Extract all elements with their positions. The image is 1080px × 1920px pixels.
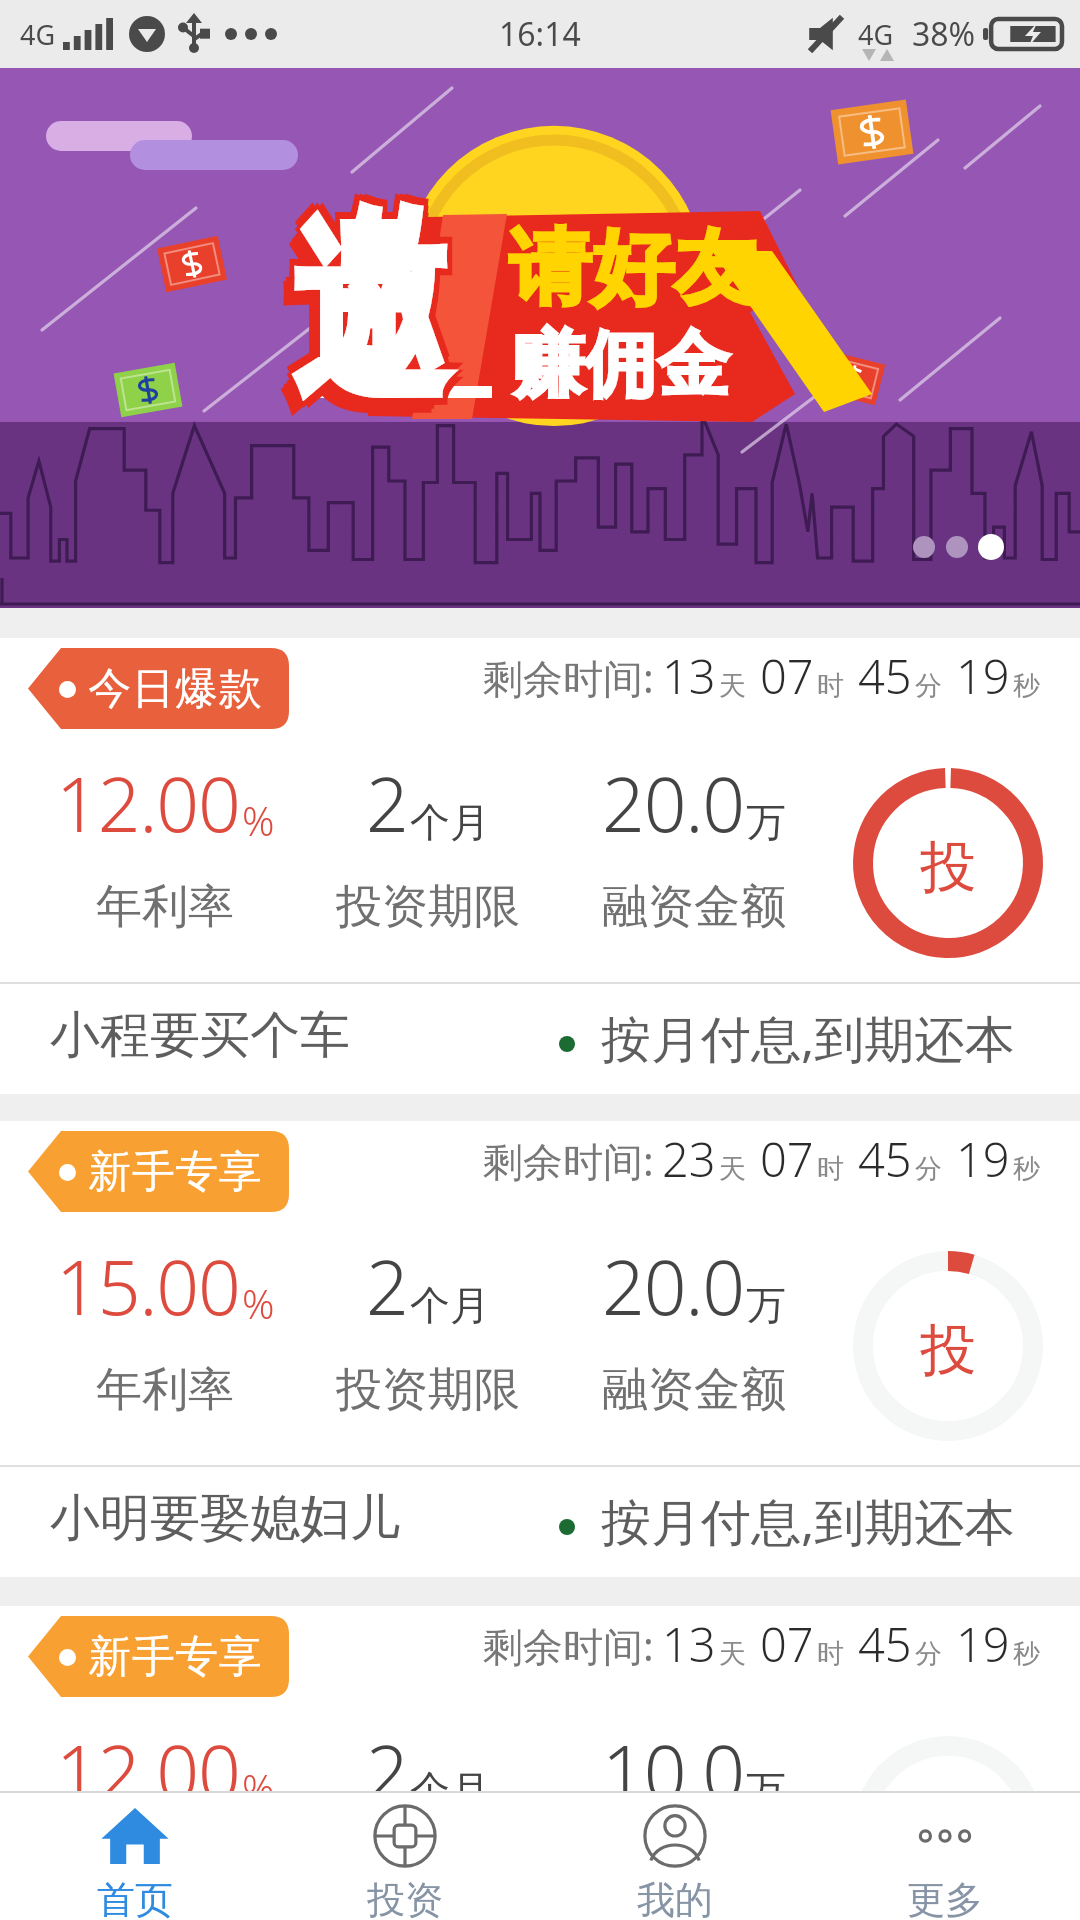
staticText: 个月 [410,1280,490,1330]
button[interactable]: 投资 [853,1251,1043,1441]
staticText: 天 [719,669,746,703]
staticText: 投 [920,832,976,903]
staticText: 45 [858,1127,912,1191]
staticText: 剩余时间: [483,1133,654,1188]
staticText: 4G [858,16,894,53]
staticText: 邀 [292,181,446,437]
staticText: 投资 [367,1876,443,1920]
staticText: 邀 [287,181,441,437]
staticText: 投资期限 [336,878,520,936]
staticText: 38% [912,12,976,56]
button[interactable]: 我的 [540,1793,810,1920]
staticText: % [242,1276,275,1330]
staticText: 请好友 [509,217,757,320]
staticText: 时 [817,1637,844,1671]
staticText: 天 [719,1637,746,1671]
staticText: 投资期限 [336,1361,520,1419]
staticText: 19 [956,1127,1010,1191]
staticText: 小明要娶媳妇儿 [50,1487,400,1550]
staticText: 万 [746,1280,786,1330]
staticText: 20.0 [602,1235,744,1337]
button[interactable]: 投资 [853,1736,1043,1806]
staticText: 邀 [297,181,451,437]
staticText: 15.00 [56,1235,240,1337]
staticText: 2 [366,1720,408,1806]
staticText: 万 [746,797,786,847]
staticText: 19 [956,1612,1010,1676]
staticText: 分 [915,1152,942,1186]
staticText: 10.0 [602,1720,744,1806]
staticText: 分 [915,669,942,703]
staticText: 邀 [287,174,441,431]
staticText: 16:14 [499,12,581,56]
staticText: 邀 [292,174,446,431]
staticText: 13 [662,644,716,708]
staticText: 天 [719,1152,746,1186]
button[interactable]: 首页 [0,1793,270,1920]
staticText: 秒 [1013,1152,1040,1186]
button[interactable]: 新手专享 [0,1121,1080,1577]
button[interactable]: 新手专享 [0,1606,1080,1806]
staticText: 首页 [97,1876,173,1920]
button[interactable]: 投资 [853,768,1043,958]
staticText: 07 [760,644,814,708]
button[interactable]: 今日爆款 [0,638,1080,1094]
staticText: 45 [858,1612,912,1676]
staticText: 45 [858,644,912,708]
staticText: 按月付息,到期还本 [601,1004,1015,1072]
staticText: 2 [366,752,408,854]
staticText: 个月 [410,797,490,847]
staticText: 4G [20,16,56,53]
staticText: 小程要买个车 [50,1004,350,1067]
staticText: 邀 [281,196,435,452]
staticText: 07 [760,1127,814,1191]
staticText: 邀 [283,192,437,449]
staticText: 融资金额 [602,1361,786,1419]
staticText: 更多 [907,1876,983,1920]
staticText: 万 [746,1765,786,1806]
staticText: 个月 [410,1765,490,1806]
staticText: % [242,1761,275,1806]
staticText: 07 [760,1612,814,1676]
staticText: 邀 [287,188,441,444]
button[interactable]: 投资 [270,1793,540,1920]
staticText: 融资金额 [602,878,786,936]
staticText: 19 [956,644,1010,708]
staticText: 年利率 [96,878,234,936]
staticText: 剩余时间: [483,1618,654,1673]
staticText: 时 [817,1152,844,1186]
staticText: 新手专享 [88,1630,262,1684]
staticText: 我的 [637,1876,713,1920]
staticText: 赚佣金 [512,320,730,411]
staticText: 时 [817,669,844,703]
button[interactable]: 更多 [810,1793,1080,1920]
button[interactable]: 邀请好友赚佣金 banner [0,68,1080,608]
staticText: 新手专享 [88,1145,262,1199]
staticText: 今日爆款 [88,662,262,716]
staticText: 分 [915,1637,942,1671]
staticText: 年利率 [96,1361,234,1419]
staticText: 按月付息,到期还本 [601,1487,1015,1555]
staticText: 投 [920,1315,976,1386]
staticText: 秒 [1013,669,1040,703]
staticText: 13 [662,1612,716,1676]
staticText: 20.0 [602,752,744,854]
staticText: 秒 [1013,1637,1040,1671]
staticText: 邀 [297,188,451,444]
staticText: 剩余时间: [483,650,654,705]
staticText: 邀 [297,174,451,431]
staticText: 12.00 [56,1720,240,1806]
staticText: 2 [366,1235,408,1337]
staticText: 12.00 [56,752,240,854]
staticText: 邀 [292,188,446,444]
staticText: 23 [662,1127,716,1191]
staticText: % [242,793,275,847]
